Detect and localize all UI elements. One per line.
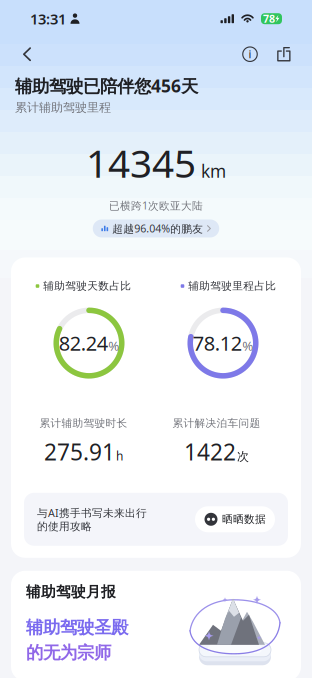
staticText: %	[108, 337, 119, 354]
staticText: 14345	[86, 137, 196, 188]
staticText: 晒晒数据	[222, 513, 266, 526]
staticText: i	[248, 47, 251, 61]
staticText: 的无为宗师	[26, 642, 111, 663]
staticText: 275.91	[44, 437, 115, 467]
staticText: 与AI携手书写未来出行的使用攻略	[37, 506, 147, 533]
staticText: 1422	[184, 437, 236, 467]
staticText: 辅助驾驶月报	[26, 583, 116, 601]
staticText: 次	[237, 449, 249, 464]
staticText: 78.12	[193, 330, 242, 356]
staticText: 13:31	[30, 9, 66, 28]
staticText: h	[116, 448, 123, 464]
staticText: 辅助驾驶里程占比	[188, 279, 276, 293]
staticText: 82.24	[59, 330, 108, 356]
staticText: km	[201, 159, 226, 182]
button[interactable]: 返回	[11, 38, 43, 70]
button[interactable]: 超越96.04%的鹏友	[93, 219, 219, 237]
staticText: 78	[263, 12, 275, 26]
staticText: 超越96.04%的鹏友	[112, 221, 203, 236]
button[interactable]: 晒晒数据	[195, 506, 275, 532]
staticText: 辅助驾驶已陪伴您456天	[15, 74, 198, 97]
staticText: 已横跨1次欧亚大陆	[109, 198, 203, 212]
staticText: 辅助驾驶圣殿	[26, 617, 128, 638]
staticText: %	[242, 337, 253, 354]
button[interactable]: 信息	[235, 39, 265, 69]
button[interactable]: 分享	[269, 39, 299, 69]
staticText: 累计辅助驾驶时长	[39, 417, 127, 430]
staticText: 累计解决泊车问题	[172, 417, 260, 430]
staticText: 辅助驾驶天数占比	[43, 279, 131, 293]
staticText: 累计辅助驾驶里程	[15, 100, 111, 115]
